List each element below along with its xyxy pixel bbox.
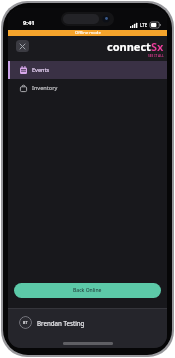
staticText: 9:41 (23, 19, 35, 27)
button[interactable]: BT (19, 316, 85, 329)
staticText: SEE IT ALL (148, 54, 164, 58)
staticText: Inventory (32, 84, 58, 92)
staticText: connect (107, 39, 151, 54)
staticText: Back Online (73, 287, 102, 294)
staticText: Events (32, 66, 50, 74)
staticText: BT (23, 320, 28, 325)
button[interactable]: Events (8, 61, 167, 79)
button[interactable]: Inventory (8, 79, 167, 97)
staticText: LTE (140, 22, 148, 28)
staticText: Offline mode (75, 30, 101, 36)
staticText: Sx (151, 39, 164, 54)
button[interactable] (16, 40, 29, 52)
button[interactable]: Back Online (14, 283, 161, 298)
staticText: Brendan Testing (37, 319, 85, 327)
